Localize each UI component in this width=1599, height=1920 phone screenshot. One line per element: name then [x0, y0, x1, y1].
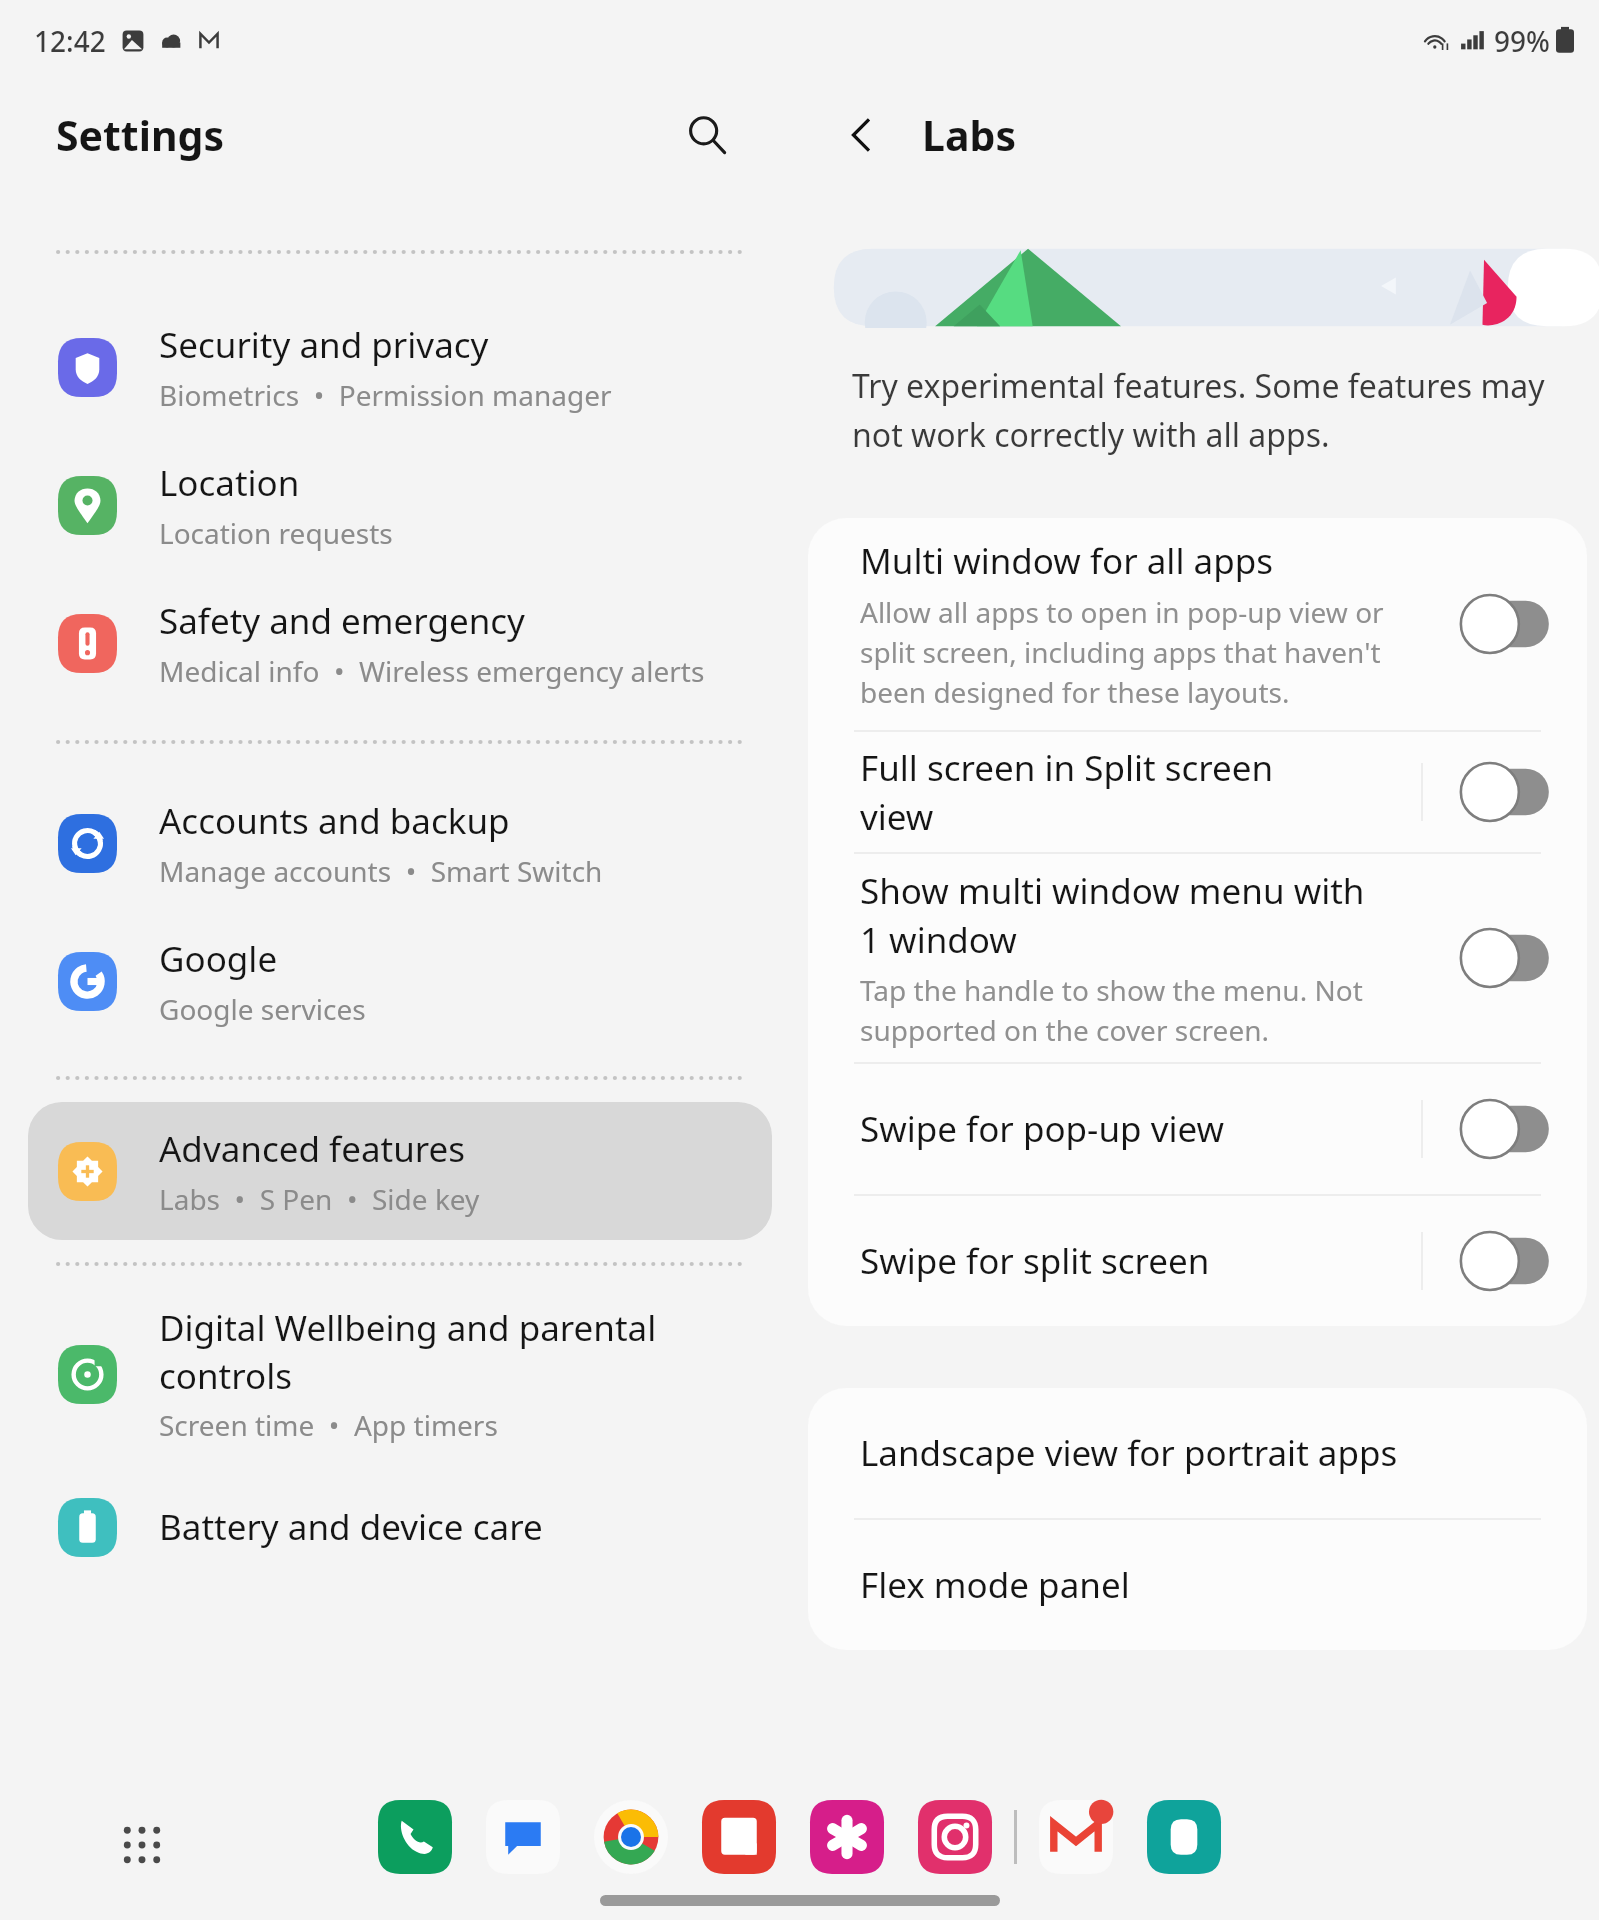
button[interactable]: Gallery	[810, 1800, 884, 1874]
button[interactable]: Landscape view for portrait apps	[808, 1388, 1587, 1518]
button[interactable]: Messages	[486, 1800, 560, 1874]
staticText: Try experimental features. Some features…	[852, 364, 1545, 456]
staticText: Landscape view for portrait apps	[860, 1429, 1398, 1477]
staticText: 12:42	[34, 22, 106, 60]
staticText: Allow all apps to open in pop-up view or…	[860, 593, 1384, 712]
button[interactable]: Back	[828, 102, 894, 168]
staticText: Labs	[922, 107, 1016, 163]
staticText: Labs • S Pen • Side key	[159, 1180, 480, 1218]
staticText: Swipe for split screen	[860, 1237, 1210, 1285]
button[interactable]: Location	[28, 436, 772, 574]
button[interactable]: One UI	[1147, 1800, 1221, 1874]
button[interactable]: Chrome	[594, 1800, 668, 1874]
button[interactable]: Search	[674, 102, 740, 168]
staticText: Digital Wellbeing and parental controls	[159, 1304, 657, 1399]
staticText: Manage accounts • Smart Switch	[159, 852, 603, 890]
button[interactable]: Multi window for all apps	[808, 518, 1587, 730]
staticText: 99%	[1494, 22, 1550, 60]
button[interactable]: Flex mode panel	[808, 1520, 1587, 1650]
button[interactable]: Battery and device care	[28, 1458, 772, 1596]
button[interactable]: Toggle Swipe for pop-up view	[1449, 1096, 1553, 1162]
button[interactable]: Toggle Swipe for split screen	[1449, 1228, 1553, 1294]
staticText: Settings	[56, 107, 225, 163]
button[interactable]: Apps	[112, 1815, 172, 1875]
button[interactable]: Show multi window menu with 1 window	[808, 854, 1587, 1062]
button[interactable]: Toggle Multi window for all apps	[1449, 591, 1553, 657]
staticText: Google	[159, 935, 278, 983]
button[interactable]: Safety and emergency	[28, 574, 772, 712]
button[interactable]: Digital Wellbeing and parental controls	[28, 1290, 772, 1458]
staticText: Full screen in Split screen view	[860, 744, 1274, 840]
staticText: Biometrics • Permission manager	[159, 376, 612, 414]
staticText: Swipe for pop-up view	[860, 1105, 1225, 1153]
button[interactable]: Instagram	[918, 1800, 992, 1874]
button[interactable]: Full screen in Split screen view	[808, 732, 1587, 852]
staticText: Multi window for all apps	[860, 537, 1273, 585]
staticText: Show multi window menu with 1 window	[860, 867, 1365, 963]
button[interactable]: Toggle Full screen in Split screen view	[1449, 759, 1553, 825]
staticText: Battery and device care	[159, 1503, 543, 1551]
button[interactable]: Advanced features	[28, 1102, 772, 1240]
staticText: Location	[159, 459, 300, 507]
button[interactable]: Security and privacy	[28, 298, 772, 436]
button[interactable]: Phone	[378, 1800, 452, 1874]
staticText: Security and privacy	[159, 321, 489, 369]
staticText: Safety and emergency	[159, 597, 525, 645]
staticText: Flex mode panel	[860, 1561, 1130, 1609]
staticText: Location requests	[159, 514, 393, 552]
button[interactable]: Toggle Show multi window menu with 1 win…	[1449, 925, 1553, 991]
button[interactable]: Samsung Notes	[702, 1800, 776, 1874]
button[interactable]: Swipe for split screen	[808, 1196, 1587, 1326]
staticText: Medical info • Wireless emergency alerts	[159, 652, 705, 690]
staticText: Accounts and backup	[159, 797, 510, 845]
button[interactable]: Google	[28, 912, 772, 1050]
button[interactable]: Swipe for pop-up view	[808, 1064, 1587, 1194]
button[interactable]: Accounts and backup	[28, 774, 772, 912]
button[interactable]: Gmail	[1039, 1800, 1113, 1874]
staticText: Advanced features	[159, 1125, 466, 1173]
staticText: Screen time • App timers	[159, 1406, 498, 1444]
staticText: Google services	[159, 990, 366, 1028]
staticText: Tap the handle to show the menu. Not sup…	[860, 971, 1363, 1050]
